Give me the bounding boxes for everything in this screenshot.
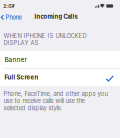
staticText: Full Screen (4, 74, 38, 81)
staticText: WHEN IPHONE IS UNLOCKED DISPLAY AS (3, 32, 86, 46)
staticText: Incoming Calls (34, 13, 77, 20)
button[interactable]: Phone (1, 12, 24, 23)
staticText: Phone, FaceTime, and other apps you (3, 90, 107, 97)
button[interactable]: Full Screen (0, 69, 120, 86)
button[interactable]: Banner (0, 51, 120, 68)
staticText: 2:07 (3, 3, 14, 9)
staticText: Phone (6, 14, 22, 21)
staticText: selected display style. (3, 104, 62, 112)
staticText: Banner (4, 55, 26, 63)
staticText: use to receive calls will use the (3, 97, 84, 104)
